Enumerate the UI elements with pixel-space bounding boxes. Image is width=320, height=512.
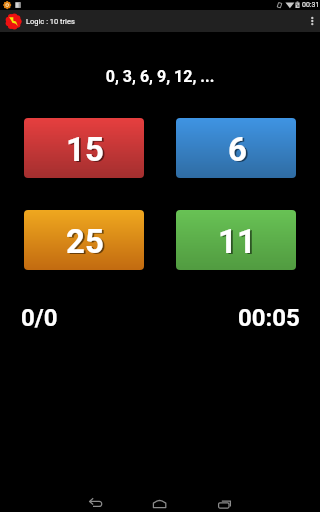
button[interactable]: 6 [176,118,296,178]
staticText: 25 [66,222,104,261]
staticText: 11 [218,222,256,261]
staticText: 00:31 [302,1,320,9]
button[interactable]: 11 [176,210,296,270]
button[interactable]: 15 [24,118,144,178]
staticText: 0, 3, 6, 9, 12, ... [0,67,320,86]
staticText: 15 [68,131,106,170]
button[interactable]: Home [138,490,182,512]
staticText: 15 [66,130,104,169]
button[interactable]: Back [74,490,118,512]
button[interactable]: More options [298,10,320,32]
staticText: 25 [68,223,106,262]
button[interactable]: Recent apps [203,490,247,512]
staticText: 0/0 [21,304,58,332]
button[interactable]: 25 [24,210,144,270]
staticText: 6 [230,131,249,170]
staticText: 11 [220,223,258,262]
staticText: Logic : 10 tries [26,17,75,26]
staticText: 6 [228,130,247,169]
staticText: 00:05 [238,304,300,332]
